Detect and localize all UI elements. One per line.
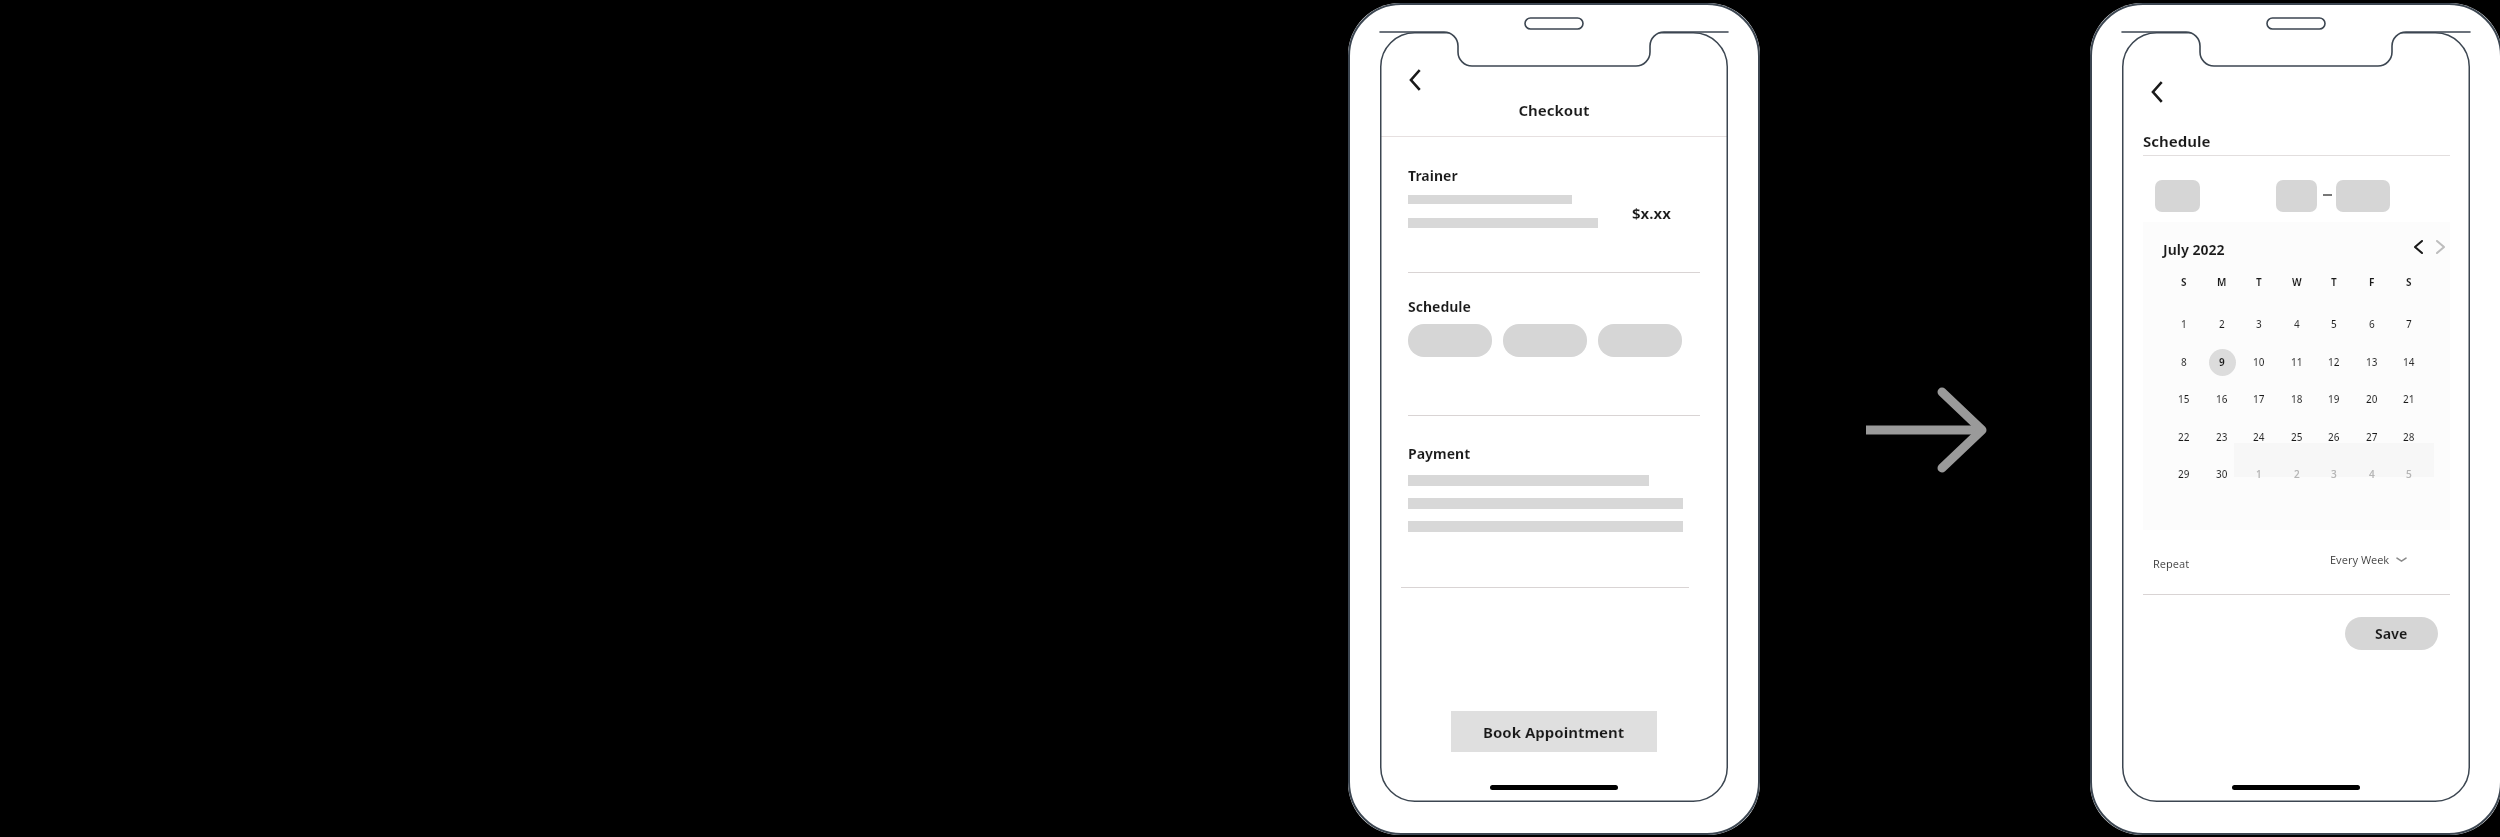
staticText: 24 <box>2253 430 2265 444</box>
staticText: 29 <box>2178 467 2190 481</box>
staticText: 14 <box>2403 355 2415 369</box>
staticText: M <box>2217 275 2227 289</box>
button[interactable]: 8 <box>2165 343 2203 381</box>
button[interactable]: 3 <box>2240 305 2278 343</box>
button[interactable]: Previous month <box>2406 235 2430 259</box>
button[interactable]: 3 <box>2315 455 2353 493</box>
staticText: Payment <box>1408 444 1471 463</box>
staticText: 1 <box>2181 317 2187 331</box>
staticText: 9 <box>2219 355 2225 369</box>
button[interactable]: 5 <box>2390 455 2428 493</box>
button[interactable]: 13 <box>2353 343 2391 381</box>
button[interactable]: Back <box>2140 74 2176 110</box>
staticText: 21 <box>2403 392 2415 406</box>
button[interactable]: 7 <box>2390 305 2428 343</box>
staticText: 4 <box>2294 317 2300 331</box>
staticText: 25 <box>2291 430 2303 444</box>
button[interactable]: Select date <box>2155 180 2200 212</box>
button[interactable]: 24 <box>2240 418 2278 456</box>
staticText: 3 <box>2331 467 2337 481</box>
button[interactable]: 17 <box>2240 380 2278 418</box>
staticText: S <box>2181 275 2187 289</box>
button[interactable]: 22 <box>2165 418 2203 456</box>
staticText: 30 <box>2216 467 2228 481</box>
staticText: 18 <box>2291 392 2303 406</box>
staticText: 2 <box>2294 467 2300 481</box>
staticText: 17 <box>2253 392 2265 406</box>
button[interactable]: 2 <box>2203 305 2241 343</box>
staticText: 26 <box>2328 430 2340 444</box>
staticText: 11 <box>2291 355 2303 369</box>
button[interactable]: 4 <box>2278 305 2316 343</box>
staticText: 8 <box>2181 355 2187 369</box>
button[interactable]: Schedule slot <box>1503 324 1587 357</box>
staticText: 22 <box>2178 430 2190 444</box>
button[interactable]: 6 <box>2353 305 2391 343</box>
staticText: 12 <box>2328 355 2340 369</box>
staticText: T <box>2256 275 2262 289</box>
button[interactable]: 28 <box>2390 418 2428 456</box>
staticText: 15 <box>2178 392 2190 406</box>
button[interactable]: 10 <box>2240 343 2278 381</box>
staticText: T <box>2331 275 2337 289</box>
staticText: W <box>2292 275 2302 289</box>
staticText: 7 <box>2406 317 2412 331</box>
button[interactable]: 9 <box>2203 343 2241 381</box>
staticText: 13 <box>2366 355 2378 369</box>
staticText: 23 <box>2216 430 2228 444</box>
staticText: Schedule <box>1408 297 1471 316</box>
staticText: 1 <box>2256 467 2262 481</box>
button[interactable]: Next month <box>2428 235 2452 259</box>
button[interactable]: Book Appointment <box>1451 711 1657 752</box>
staticText: 2 <box>2219 317 2225 331</box>
button[interactable]: 29 <box>2165 455 2203 493</box>
staticText: 20 <box>2366 392 2378 406</box>
staticText: Save <box>2375 624 2408 643</box>
button[interactable]: 11 <box>2278 343 2316 381</box>
staticText: Schedule <box>2143 131 2211 151</box>
button[interactable]: 18 <box>2278 380 2316 418</box>
button[interactable]: Schedule slot <box>1408 324 1492 357</box>
staticText: July 2022 <box>2163 240 2225 259</box>
button[interactable]: 27 <box>2353 418 2391 456</box>
staticText: 16 <box>2216 392 2228 406</box>
button[interactable]: 26 <box>2315 418 2353 456</box>
button[interactable]: 1 <box>2165 305 2203 343</box>
button[interactable]: 4 <box>2353 455 2391 493</box>
button[interactable]: Save <box>2345 617 2438 650</box>
staticText: $x.xx <box>1632 203 1671 223</box>
staticText: S <box>2406 275 2412 289</box>
button[interactable]: 30 <box>2203 455 2241 493</box>
staticText: Repeat <box>2153 556 2190 571</box>
button[interactable]: 25 <box>2278 418 2316 456</box>
staticText: 6 <box>2369 317 2375 331</box>
button[interactable]: 15 <box>2165 380 2203 418</box>
button[interactable]: 12 <box>2315 343 2353 381</box>
button[interactable]: 14 <box>2390 343 2428 381</box>
button[interactable]: 5 <box>2315 305 2353 343</box>
staticText: 5 <box>2331 317 2337 331</box>
staticText: 3 <box>2256 317 2262 331</box>
button[interactable]: Back <box>1398 62 1434 98</box>
staticText: 10 <box>2253 355 2265 369</box>
button[interactable]: 16 <box>2203 380 2241 418</box>
staticText: 28 <box>2403 430 2415 444</box>
button[interactable]: Schedule slot <box>1598 324 1682 357</box>
button[interactable]: Start time <box>2276 180 2317 212</box>
button[interactable]: 2 <box>2278 455 2316 493</box>
button[interactable]: 19 <box>2315 380 2353 418</box>
staticText: Trainer <box>1408 166 1458 185</box>
button[interactable]: 21 <box>2390 380 2428 418</box>
staticText: 27 <box>2366 430 2378 444</box>
button[interactable]: 1 <box>2240 455 2278 493</box>
staticText: F <box>2369 275 2375 289</box>
staticText: 4 <box>2369 467 2375 481</box>
button[interactable]: 20 <box>2353 380 2391 418</box>
staticText: Book Appointment <box>1483 722 1625 742</box>
staticText: 19 <box>2328 392 2340 406</box>
button[interactable]: 23 <box>2203 418 2241 456</box>
staticText: Checkout <box>1380 100 1728 120</box>
button[interactable]: Every Week <box>2330 552 2406 567</box>
staticText: Every Week <box>2330 552 2390 567</box>
button[interactable]: End time <box>2336 180 2390 212</box>
